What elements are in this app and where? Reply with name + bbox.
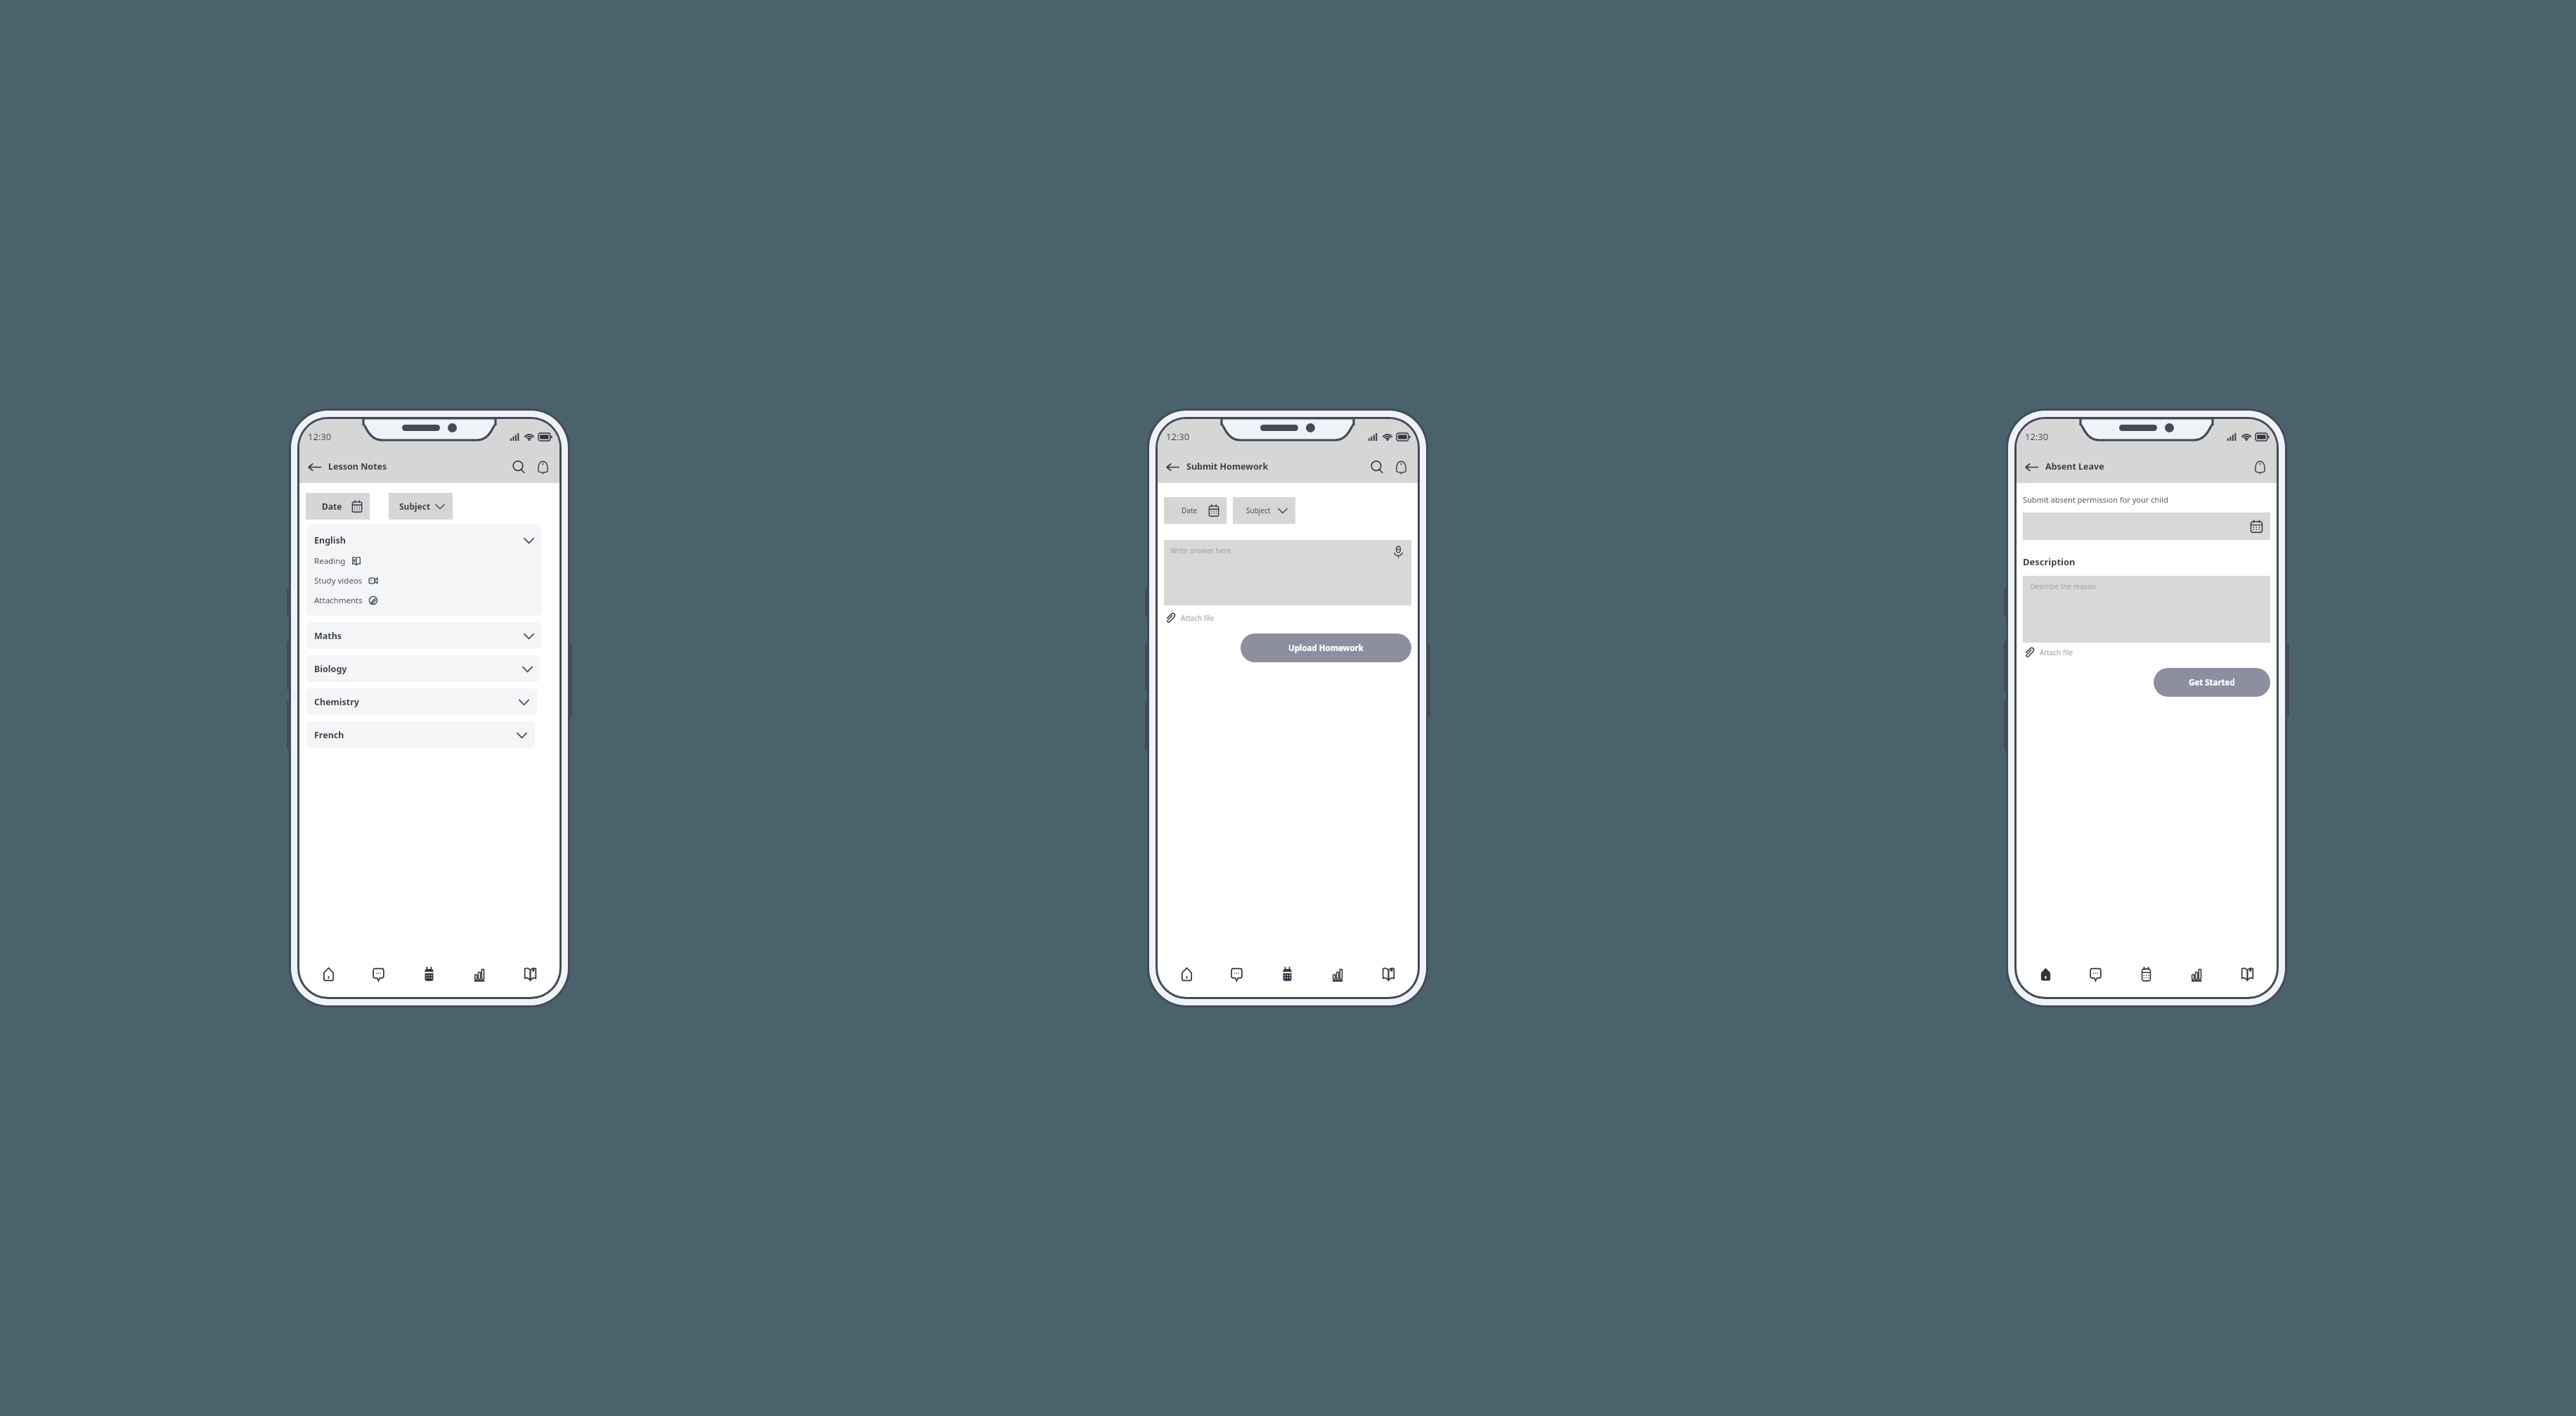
button[interactable]: Subject	[1233, 497, 1295, 524]
button[interactable]: Home	[1162, 951, 1212, 997]
staticText: Submit absent permission for your child	[2023, 494, 2168, 505]
staticText: Get Started	[2189, 677, 2235, 688]
button[interactable]: Biology	[306, 655, 541, 682]
staticText: Absent Leave	[2045, 461, 2104, 472]
button[interactable]: Messages	[1212, 951, 1262, 997]
staticText: Date	[1182, 506, 1198, 515]
button[interactable]: Date	[1164, 497, 1226, 524]
button[interactable]: Chemistry	[306, 688, 537, 715]
button[interactable]: Reading	[314, 555, 361, 567]
button[interactable]: Calendar	[2121, 951, 2171, 997]
button[interactable]: Library	[505, 951, 555, 997]
staticText: Reading	[314, 555, 346, 567]
staticText: Date	[322, 501, 342, 512]
button[interactable]: Back	[1165, 458, 1182, 475]
button[interactable]: Subject	[389, 493, 453, 520]
button[interactable]: Attach file	[1164, 610, 1215, 625]
button[interactable]: Describe the reason	[2023, 576, 2270, 643]
button[interactable]: Search	[509, 457, 529, 477]
button[interactable]: Statistics	[454, 951, 505, 997]
button[interactable]: Home	[2021, 951, 2071, 997]
staticText: Upload Homework	[1288, 643, 1364, 654]
button[interactable]: Date	[306, 493, 370, 520]
button[interactable]: Statistics	[2171, 951, 2222, 997]
button[interactable]: English	[306, 524, 542, 616]
button[interactable]: Calendar	[403, 951, 454, 997]
staticText: English	[314, 534, 346, 546]
staticText: French	[314, 729, 344, 741]
button[interactable]: Maths	[306, 622, 542, 649]
staticText: Describe the reason	[2030, 581, 2096, 591]
button[interactable]: Statistics	[1312, 951, 1363, 997]
staticText: Maths	[314, 630, 342, 642]
button[interactable]: Get Started	[2154, 668, 2270, 697]
staticText: 12:30	[2025, 430, 2049, 443]
staticText: Attachments	[314, 595, 363, 606]
button[interactable]: Home	[304, 951, 354, 997]
staticText: 12:30	[1166, 430, 1190, 443]
other: Pick date	[2250, 520, 2263, 533]
staticText: Write answer here	[1170, 546, 1231, 555]
button[interactable]: Notifications	[1391, 457, 1411, 477]
button[interactable]: Library	[1363, 951, 1413, 997]
staticText: 12:30	[308, 430, 332, 443]
button[interactable]: Search	[1367, 457, 1387, 477]
button[interactable]: Back	[2024, 458, 2040, 475]
button[interactable]: Messages	[354, 951, 403, 997]
button[interactable]: Calendar	[1262, 951, 1312, 997]
staticText: Chemistry	[314, 696, 359, 708]
button[interactable]: Upload Homework	[1241, 633, 1411, 662]
button[interactable]: Write answer here	[1164, 540, 1411, 605]
staticText: Submit Homework	[1186, 461, 1269, 472]
button[interactable]: Attachments	[314, 594, 378, 607]
staticText: Lesson Notes	[328, 461, 387, 472]
staticText: Study videos	[314, 575, 363, 586]
button[interactable]: Voice input	[1392, 546, 1405, 559]
button[interactable]: Notifications	[533, 457, 552, 477]
staticText: Description	[2023, 555, 2076, 568]
button[interactable]: Back	[306, 458, 323, 475]
button[interactable]: Library	[2222, 951, 2272, 997]
staticText: Attach file	[2040, 648, 2073, 657]
staticText: Biology	[314, 663, 347, 675]
button[interactable]: French	[306, 721, 535, 748]
button[interactable]: Notifications	[2250, 457, 2270, 477]
button[interactable]: Pick date	[2023, 513, 2270, 540]
button[interactable]: Messages	[2071, 951, 2121, 997]
button[interactable]: Study videos	[314, 574, 378, 587]
staticText: Subject	[1246, 506, 1271, 515]
button[interactable]: Attach file	[2023, 645, 2073, 659]
staticText: Subject	[399, 501, 431, 512]
staticText: Attach file	[1181, 613, 1215, 623]
